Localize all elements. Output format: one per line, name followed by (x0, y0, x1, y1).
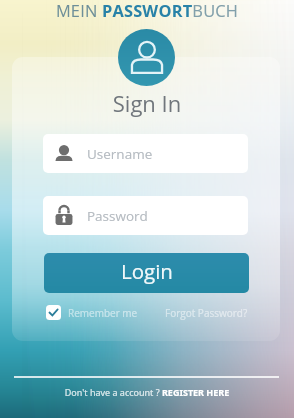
staticText: Remember me (68, 306, 138, 320)
staticText: Username (87, 145, 153, 163)
button[interactable]: Don't have a account ? REGISTER HERE (0, 386, 294, 398)
staticText: Login (121, 257, 173, 285)
button[interactable]: Forgot Password? (165, 306, 248, 320)
button[interactable]: Login (44, 253, 249, 293)
staticText: MEIN PASSWORTBUCH (0, 0, 294, 21)
button[interactable]: Remember me (46, 305, 138, 320)
staticText: Password (87, 207, 148, 225)
button[interactable]: Username (43, 134, 248, 173)
staticText: Sign In (0, 88, 294, 118)
button[interactable]: Password (43, 196, 248, 235)
